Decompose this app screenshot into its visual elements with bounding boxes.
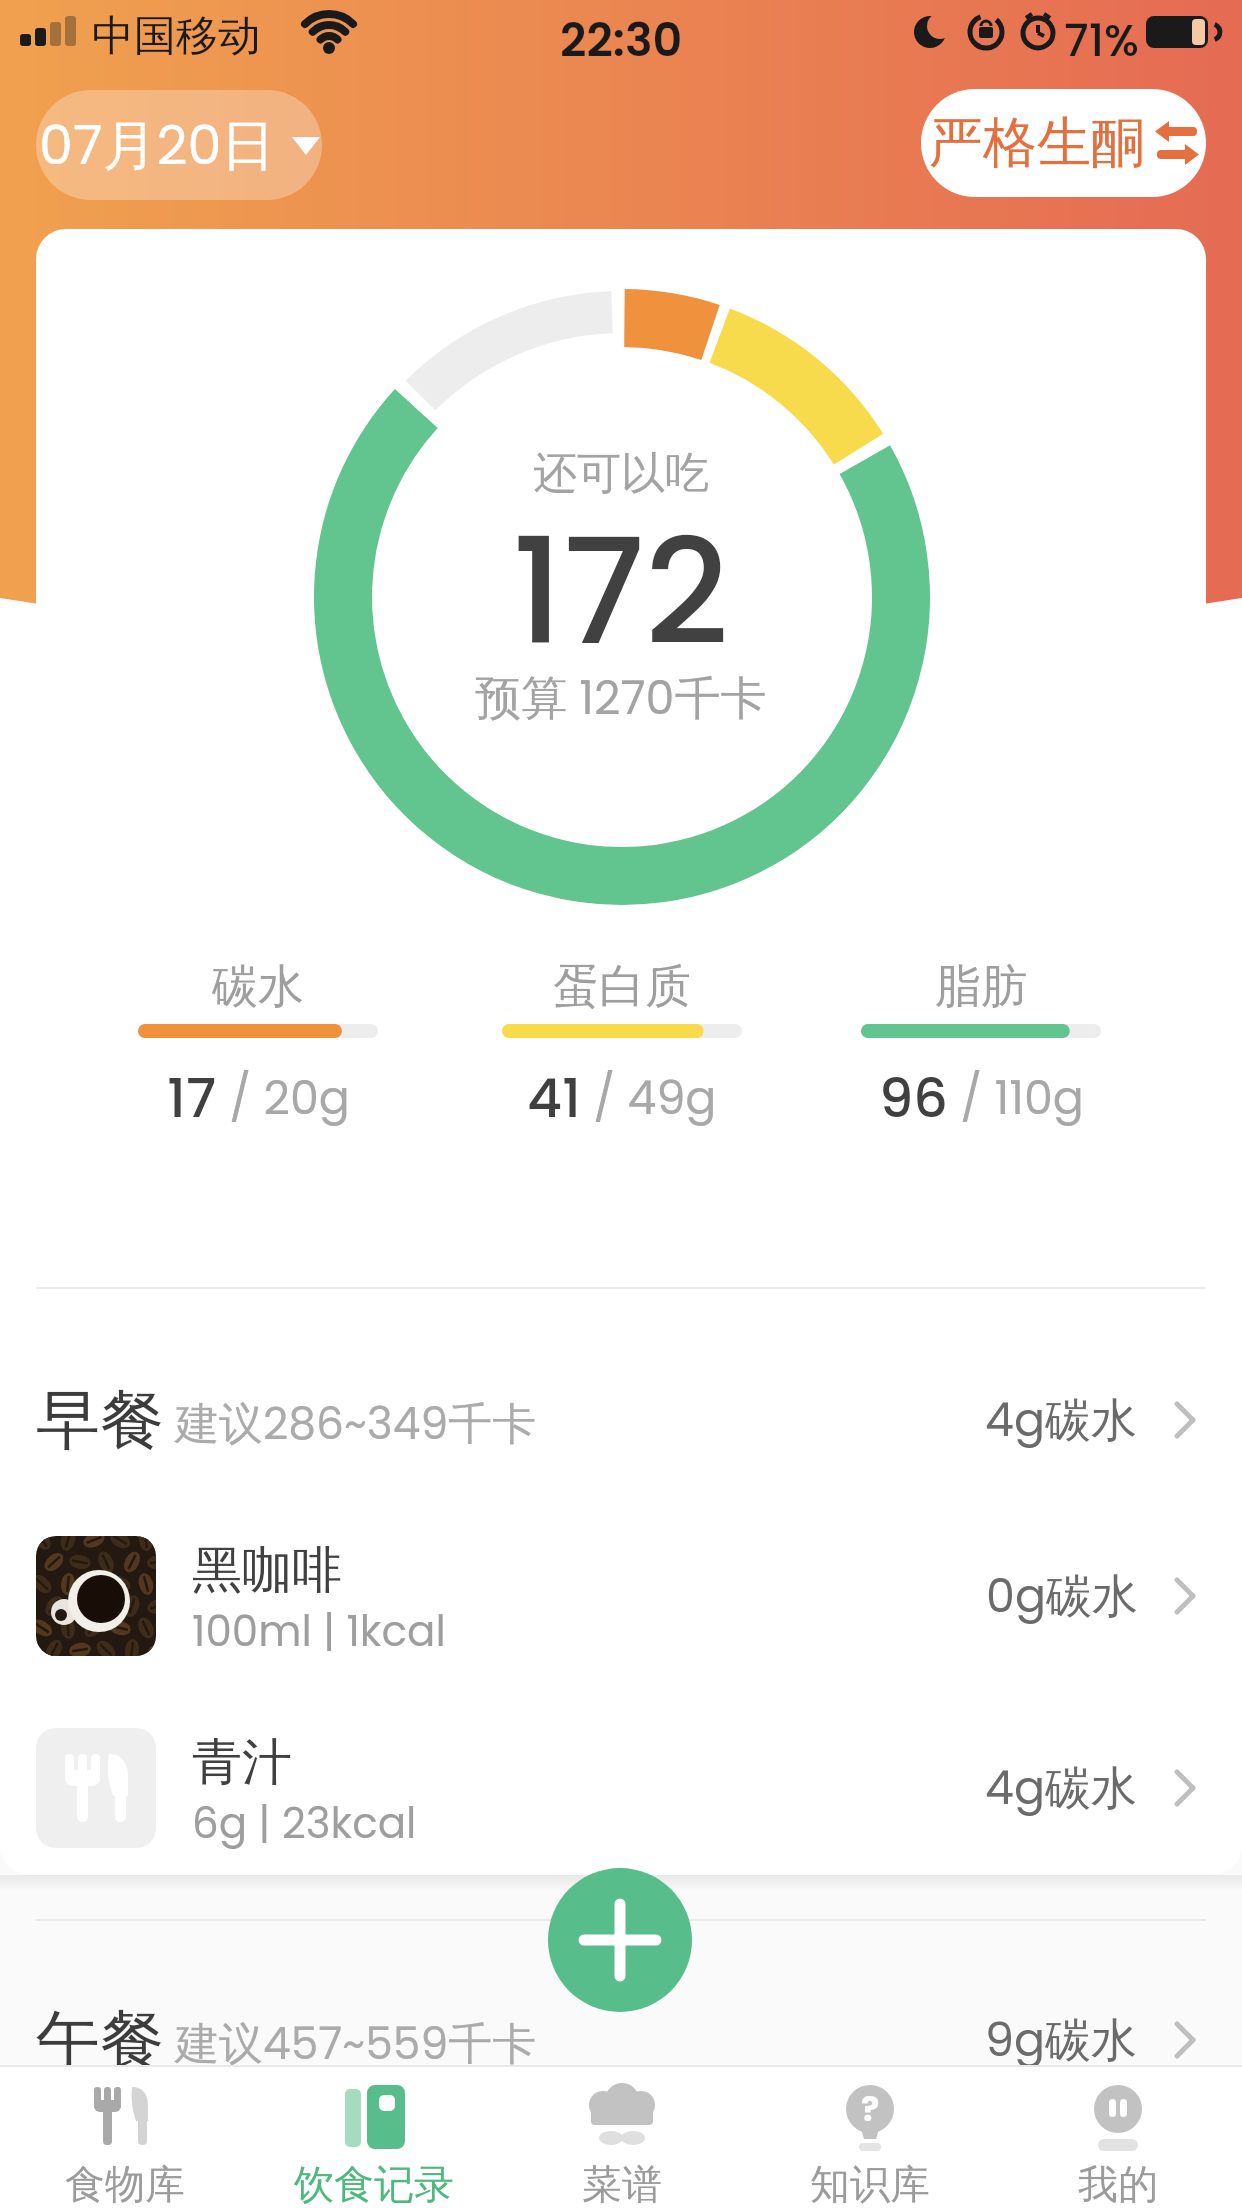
staticText: 午餐 — [36, 2000, 164, 2081]
staticText: 碳水 — [212, 958, 304, 1012]
staticText: 4g碳水 — [985, 1388, 1138, 1452]
staticText: 食物库 — [65, 2159, 185, 2208]
staticText: 饮食记录 — [294, 2159, 454, 2208]
button[interactable]: 午餐 — [36, 1990, 1206, 2090]
button[interactable]: 早餐 — [36, 1370, 1206, 1470]
button[interactable]: 黑咖啡 — [36, 1521, 1206, 1671]
staticText: 100ml | 1kcal — [192, 1602, 446, 1661]
staticText: 我的 — [1078, 2159, 1158, 2208]
staticText: 41 — [527, 1060, 581, 1136]
staticText: 中国移动 — [92, 10, 260, 56]
button[interactable]: 食物库 — [0, 2067, 249, 2208]
staticText: 黑咖啡 — [192, 1539, 342, 1602]
staticText: 6g | 23kcal — [192, 1794, 417, 1853]
button[interactable]: 饮食记录 — [249, 2067, 498, 2208]
staticText: 脂肪 — [935, 958, 1027, 1012]
staticText: ? — [861, 2085, 880, 2133]
staticText: 严格生酮 — [929, 109, 1145, 177]
staticText: 预算 1270千卡 — [475, 666, 767, 726]
button[interactable]: 青汁 — [36, 1713, 1206, 1863]
staticText: 9g碳水 — [985, 2008, 1138, 2072]
staticText: 96 — [879, 1060, 948, 1136]
button[interactable]: 菜谱 — [498, 2067, 746, 2208]
button[interactable] — [548, 1868, 692, 2012]
staticText: 蛋白质 — [553, 958, 691, 1012]
staticText: 17 — [167, 1060, 217, 1136]
staticText: / 110g — [948, 1066, 1084, 1130]
staticText: 4g碳水 — [985, 1756, 1138, 1820]
staticText: 建议457~559千卡 — [175, 2013, 537, 2075]
staticText: 菜谱 — [582, 2159, 662, 2208]
button[interactable]: ? — [746, 2067, 994, 2208]
button[interactable]: 07月20日 — [36, 90, 322, 200]
staticText: 71% — [1064, 10, 1139, 56]
button[interactable]: 我的 — [994, 2067, 1242, 2208]
button[interactable]: 严格生酮 — [921, 89, 1206, 197]
staticText: / 49g — [581, 1066, 717, 1130]
staticText: 还可以吃 — [533, 446, 709, 500]
staticText: 07月20日 — [39, 107, 276, 183]
staticText: 172 — [512, 490, 730, 690]
staticText: / 20g — [217, 1066, 350, 1130]
staticText: 建议286~349千卡 — [175, 1393, 537, 1455]
staticText: 早餐 — [36, 1380, 164, 1461]
staticText: 青汁 — [192, 1731, 292, 1794]
staticText: 知识库 — [810, 2159, 930, 2208]
staticText: 0g碳水 — [986, 1564, 1138, 1628]
staticText: 22:30 — [560, 8, 683, 56]
